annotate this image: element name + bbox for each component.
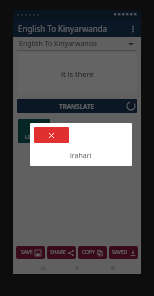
button[interactable]: Back [35,262,49,274]
staticText: COPY [82,249,95,256]
staticText: irahari [13,151,141,161]
button[interactable]: it is there [17,53,137,95]
staticText: TRANSLATE [59,102,95,111]
staticText: irahari [70,151,92,161]
button[interactable]: SAVED [109,246,138,259]
button[interactable]: LISTEN [18,119,50,143]
button[interactable]: SAVE [16,246,45,259]
staticText: LISTEN [25,133,44,140]
button[interactable]: COPY [78,246,107,259]
button[interactable]: Close [34,127,69,143]
button[interactable]: Home [70,262,84,274]
button[interactable]: More options [125,21,141,37]
staticText: English To Kinyarwanda [18,23,108,34]
staticText: SAVED [112,249,128,256]
staticText: SAVE [21,249,33,256]
button[interactable]: Recents [106,262,120,274]
staticText: English To Kinyarwanda [19,39,97,49]
button[interactable]: TRANSLATE [17,99,137,113]
staticText: SHARE [50,249,66,256]
button[interactable]: English To Kinyarwanda [17,37,137,51]
staticText: it is there [61,69,94,79]
button[interactable]: SHARE [47,246,76,259]
